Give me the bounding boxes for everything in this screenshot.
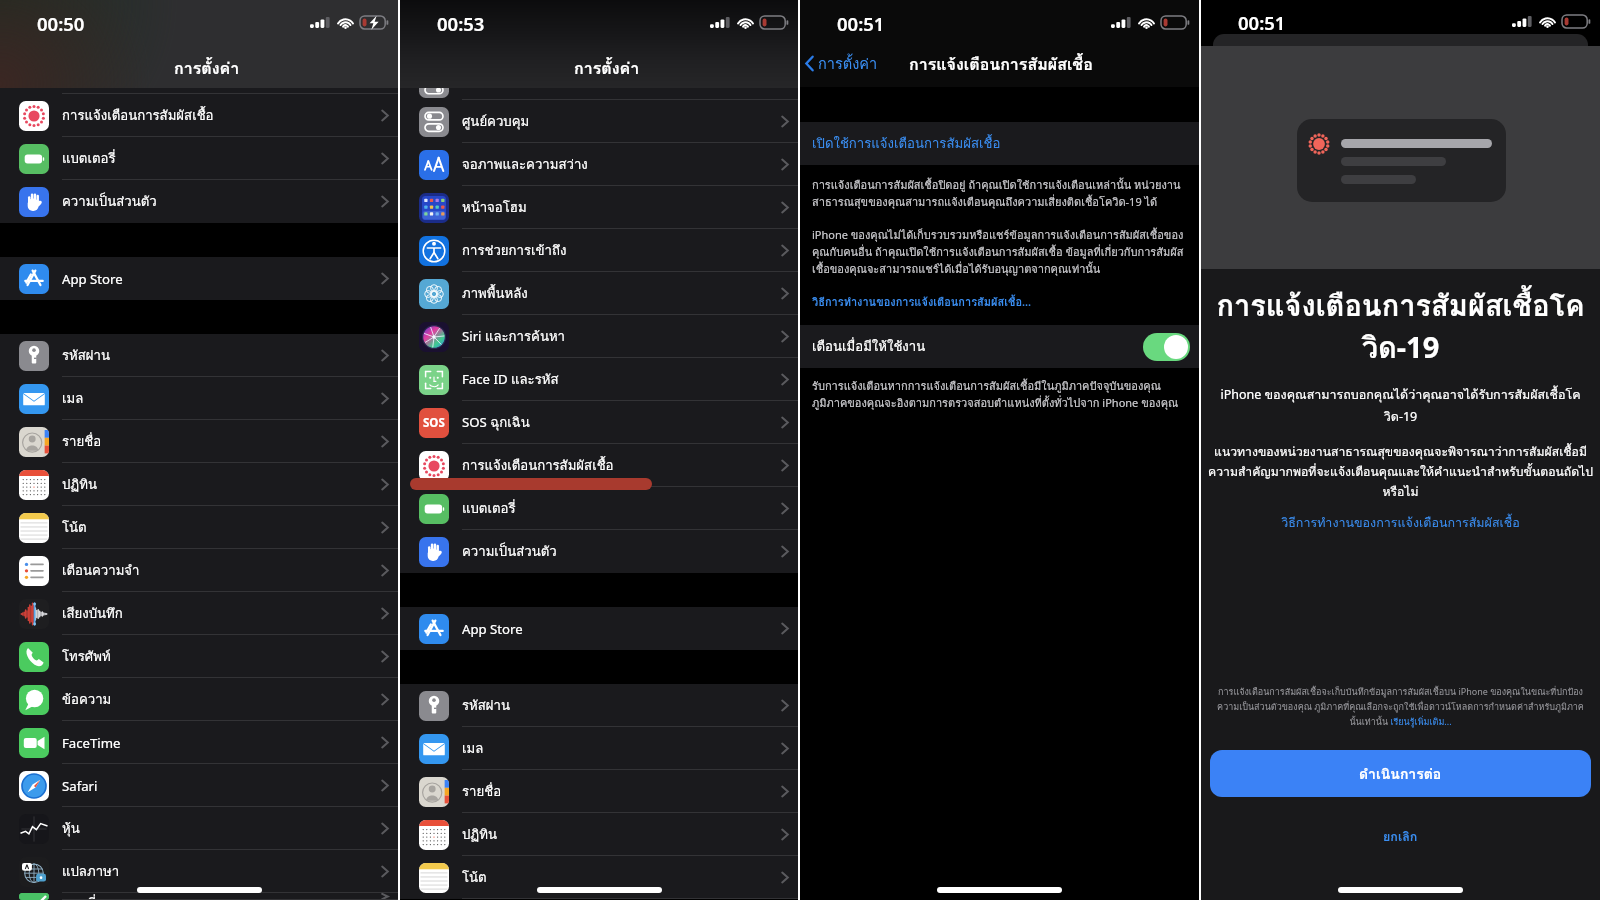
staticText: ความเป็นส่วนตัว: [62, 191, 157, 212]
button[interactable]: รายชื่อ: [400, 770, 798, 813]
button[interactable]: แบตเตอรี่: [400, 487, 798, 530]
staticText: หน้าจอโฮม: [462, 197, 527, 218]
staticText: แปลภาษา: [62, 861, 120, 882]
button[interactable]: ความเป็นส่วนตัว: [0, 180, 398, 223]
staticText: App Store: [62, 270, 123, 288]
staticText: รหัสผ่าน: [462, 695, 510, 716]
button[interactable]: โน้ต: [400, 856, 798, 899]
staticText: การแจ้งเตือนการสัมผัสเชื้อโควิด-19: [1208, 283, 1593, 371]
staticText: 00:51: [837, 11, 885, 36]
staticText: ภาพพื้นหลัง: [462, 283, 528, 304]
staticText: Siri และการค้นหา: [462, 326, 565, 347]
button[interactable]: รายชื่อ: [0, 420, 398, 463]
button[interactable]: เปิดใช้การแจ้งเตือนการสัมผัสเชื้อ: [800, 122, 1199, 165]
staticText: ยกเลิก: [1383, 827, 1418, 847]
staticText: Face ID และรหัส: [462, 369, 559, 390]
button[interactable]: Face ID และรหัส: [400, 358, 798, 401]
staticText: เมล: [462, 738, 484, 759]
staticText: การแจ้งเตือนการสัมผัสเชื้อปิดอยู่ ถ้าคุณ…: [812, 176, 1191, 211]
staticText: SOS: [423, 415, 445, 431]
staticText: 00:51: [1238, 10, 1286, 35]
staticText: ข้อความ: [62, 689, 112, 710]
staticText: เปิดใช้การแจ้งเตือนการสัมผัสเชื้อ: [812, 133, 1001, 154]
button[interactable]: ปฏิทิน: [0, 463, 398, 506]
staticText: การแจ้งเตือนการสัมผัสเชื้อ: [62, 105, 214, 126]
staticText: การช่วยการเข้าถึง: [462, 240, 567, 261]
button[interactable]: ข้อความ: [0, 678, 398, 721]
button[interactable]: โน้ต: [0, 506, 398, 549]
staticText: จอภาพและความสว่าง: [462, 154, 588, 175]
button[interactable]: การช่วยการเข้าถึง: [400, 229, 798, 272]
staticText: เตือนความจำ: [62, 560, 140, 581]
staticText: การตั้งค่า: [174, 56, 240, 81]
staticText: การแจ้งเตือนการสัมผัสเชื้อ: [462, 455, 614, 476]
button[interactable]: App Store: [0, 257, 398, 300]
staticText: ปฏิทิน: [462, 824, 497, 845]
staticText: โน้ต: [62, 517, 87, 538]
staticText: App Store: [462, 620, 523, 638]
button[interactable]: ปฏิทิน: [400, 813, 798, 856]
staticText: FaceTime: [62, 734, 121, 752]
staticText: รับการแจ้งเตือนหากการแจ้งเตือนการสัมผัสเ…: [812, 377, 1191, 412]
button[interactable]: รหัสผ่าน: [0, 334, 398, 377]
button[interactable]: เมล: [0, 377, 398, 420]
button[interactable]: หน้าจอโฮม: [400, 186, 798, 229]
button[interactable]: แปลภาษา: [0, 850, 398, 893]
staticText: SOS ฉุกเฉิน: [462, 412, 530, 433]
button[interactable]: เตือนความจำ: [0, 549, 398, 592]
button[interactable]: SOS: [400, 401, 798, 444]
staticText: การตั้งค่า: [574, 56, 640, 81]
staticText: การแจ้งเตือนการสัมผัสเชื้อ: [909, 52, 1093, 77]
button[interactable]: แผนที่: [0, 893, 398, 900]
staticText: iPhone ของคุณสามารถบอกคุณได้ว่าคุณอาจได้…: [1209, 385, 1592, 426]
button[interactable]: การแจ้งเตือนการสัมผัสเชื้อ: [0, 94, 398, 137]
staticText: 00:50: [37, 11, 85, 36]
staticText: เสียงบันทึก: [62, 603, 123, 624]
staticText: ความเป็นส่วนตัว: [462, 541, 557, 562]
staticText: เมล: [62, 388, 84, 409]
button[interactable]: Toggle availability alerts: [1143, 333, 1190, 361]
staticText: ดำเนินการต่อ: [1359, 763, 1442, 785]
staticText: ปฏิทิน: [62, 474, 97, 495]
staticText: iPhone ของคุณไม่ได้เก็บรวบรวมหรือแชร์ข้อ…: [812, 226, 1191, 278]
staticText: ศูนย์ควบคุม: [462, 111, 530, 132]
staticText: วิธีการทำงานของการแจ้งเตือนการสัมผัสเชื้…: [812, 293, 1032, 310]
button[interactable]: ดำเนินการต่อ: [1210, 750, 1591, 797]
button[interactable]: ยกเลิก: [1201, 826, 1600, 848]
button[interactable]: วิธีการทำงานของการแจ้งเตือนการสัมผัสเชื้…: [1201, 513, 1600, 533]
staticText: รายชื่อ: [462, 781, 502, 802]
staticText: แผนที่: [62, 893, 96, 900]
button[interactable]: ความเป็นส่วนตัว: [400, 530, 798, 573]
staticText: 00:53: [437, 11, 485, 36]
staticText: การแจ้งเตือนการสัมผัสเชื้อจะเก็บบันทึกข้…: [1215, 685, 1586, 729]
staticText: แนวทางของหน่วยงานสาธารณสุขของคุณจะพิจารณ…: [1205, 442, 1596, 502]
staticText: การตั้งค่า: [818, 52, 878, 75]
button[interactable]: เตือนเมื่อมีให้ใช้งาน: [800, 325, 1199, 368]
button[interactable]: รหัสผ่าน: [400, 684, 798, 727]
button[interactable]: เมล: [400, 727, 798, 770]
staticText: เตือนเมื่อมีให้ใช้งาน: [812, 336, 926, 357]
button[interactable]: ภาพพื้นหลัง: [400, 272, 798, 315]
staticText: โน้ต: [462, 867, 487, 888]
staticText: วิธีการทำงานของการแจ้งเตือนการสัมผัสเชื้…: [1201, 513, 1600, 533]
button[interactable]: Siri และการค้นหา: [400, 315, 798, 358]
button[interactable]: Safari: [0, 764, 398, 807]
staticText: รายชื่อ: [62, 431, 102, 452]
button[interactable]: การตั้งค่า: [805, 52, 878, 75]
staticText: โทรศัพท์: [62, 646, 111, 667]
button[interactable]: การแจ้งเตือนการสัมผัสเชื้อ: [400, 444, 798, 487]
staticText: หุ้น: [62, 818, 80, 839]
staticText: แบตเตอรี่: [462, 498, 516, 519]
button[interactable]: FaceTime: [0, 721, 398, 764]
button[interactable]: App Store: [400, 607, 798, 650]
button[interactable]: หุ้น: [0, 807, 398, 850]
button[interactable]: ศูนย์ควบคุม: [400, 100, 798, 143]
button[interactable]: จอภาพและความสว่าง: [400, 143, 798, 186]
staticText: แบตเตอรี่: [62, 148, 116, 169]
staticText: Safari: [62, 777, 98, 795]
button[interactable]: แบตเตอรี่: [0, 137, 398, 180]
button[interactable]: เสียงบันทึก: [0, 592, 398, 635]
button[interactable]: โทรศัพท์: [0, 635, 398, 678]
staticText: รหัสผ่าน: [62, 345, 110, 366]
